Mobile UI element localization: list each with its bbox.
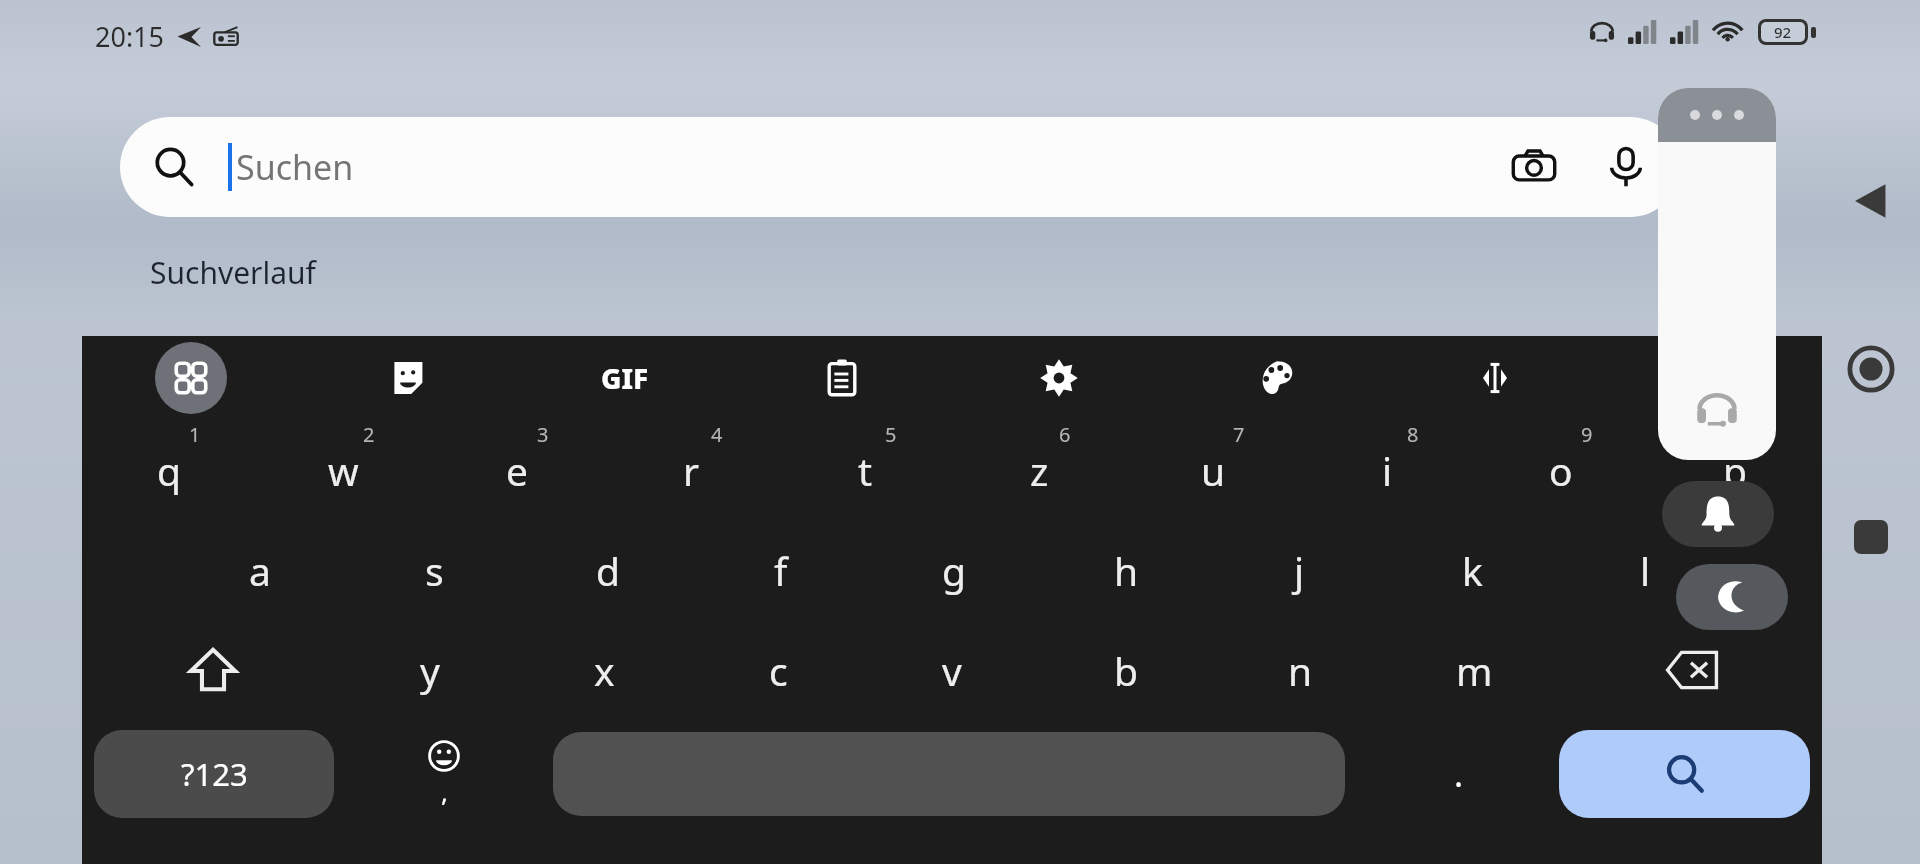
staticText: m (1456, 644, 1493, 697)
button[interactable]: . (1383, 720, 1534, 828)
staticText: 3 (537, 421, 549, 448)
button[interactable]: Startbildschirm (1835, 333, 1907, 405)
staticText: y (420, 644, 440, 697)
button[interactable]: o (1474, 420, 1648, 520)
staticText: 9 (1581, 421, 1593, 448)
button[interactable]: Einstellungen (950, 336, 1168, 420)
staticText: d (596, 544, 620, 597)
staticText: 8 (1407, 421, 1419, 448)
button[interactable]: Zwischenablage (733, 336, 950, 420)
staticText: r (683, 444, 700, 497)
button[interactable]: Löschen (1561, 620, 1822, 720)
button[interactable]: Suchen (1559, 730, 1810, 818)
staticText: e (506, 444, 528, 497)
button[interactable]: z (952, 420, 1126, 520)
staticText: 5 (885, 421, 897, 448)
staticText: i (1382, 444, 1393, 497)
button[interactable]: Emoji (365, 720, 522, 828)
staticText: k (1462, 544, 1483, 597)
button[interactable]: l (1559, 520, 1732, 620)
button[interactable]: n (1213, 620, 1387, 720)
button[interactable]: g (867, 520, 1040, 620)
staticText: c (769, 644, 788, 697)
button[interactable]: y (343, 620, 517, 720)
staticText: v (942, 644, 962, 697)
button[interactable]: Design (1168, 336, 1386, 420)
staticText: t (858, 444, 873, 497)
button[interactable]: a (173, 520, 347, 620)
staticText: 92 (1774, 22, 1792, 42)
button[interactable]: m (1387, 620, 1561, 720)
button[interactable]: h (1040, 520, 1213, 620)
button[interactable]: e (430, 420, 604, 520)
button[interactable]: Sticker (299, 336, 516, 420)
button[interactable]: GIF (516, 336, 733, 420)
button[interactable]: c (691, 620, 865, 720)
button[interactable]: w (256, 420, 430, 520)
button[interactable]: Leertaste (553, 732, 1345, 816)
staticText: p (1723, 444, 1747, 497)
button[interactable]: i (1300, 420, 1474, 520)
staticText: j (1294, 544, 1305, 597)
button[interactable]: t (778, 420, 952, 520)
button[interactable]: Suchsymbol (120, 117, 1680, 217)
staticText: x (594, 644, 615, 697)
staticText: s (425, 544, 444, 597)
button[interactable]: p (1648, 420, 1822, 520)
button[interactable]: v (865, 620, 1039, 720)
button[interactable]: d (521, 520, 694, 620)
button[interactable]: Audio (1658, 360, 1776, 460)
staticText: h (1114, 544, 1139, 597)
staticText: a (249, 544, 271, 597)
staticText: 20:15 (95, 18, 165, 55)
staticText: l (1640, 544, 1651, 597)
staticText: Suchen (236, 144, 354, 190)
button[interactable]: Suchverlauf (150, 252, 316, 293)
button[interactable]: Umschalttaste (82, 620, 343, 720)
staticText: g (942, 544, 966, 597)
staticText: Suchverlauf (150, 252, 316, 293)
staticText: 6 (1059, 421, 1071, 448)
staticText: . (1454, 751, 1464, 797)
other: Suchsymbol (152, 145, 196, 189)
button[interactable]: u (1126, 420, 1300, 520)
staticText: 2 (363, 421, 375, 448)
button[interactable]: r (604, 420, 778, 520)
button[interactable]: Overlay-Menü (1658, 88, 1776, 142)
button[interactable]: ?123 (94, 730, 334, 818)
button[interactable]: Textbearbeitung (1386, 336, 1604, 420)
button[interactable]: f (694, 520, 867, 620)
button[interactable]: k (1386, 520, 1559, 620)
button[interactable]: Zurück (1835, 165, 1907, 237)
staticText: GIF (601, 359, 649, 397)
staticText: z (1030, 444, 1049, 497)
staticText: 1 (189, 421, 201, 448)
staticText: u (1201, 444, 1226, 497)
button[interactable]: Google Lens (1498, 131, 1570, 203)
button[interactable]: Nicht stören (1676, 564, 1788, 630)
staticText: o (1549, 444, 1573, 497)
button[interactable]: Benachrichtigungen (1662, 481, 1774, 547)
button[interactable]: b (1039, 620, 1213, 720)
staticText: w (328, 444, 359, 497)
button[interactable]: Spracheingabe (1590, 131, 1662, 203)
staticText: 4 (711, 421, 723, 448)
staticText: q (157, 444, 181, 497)
button[interactable]: q (82, 420, 256, 520)
staticText: ?123 (181, 753, 248, 795)
button[interactable]: j (1213, 520, 1386, 620)
button[interactable]: Übersicht (1835, 501, 1907, 573)
button[interactable]: x (517, 620, 691, 720)
button[interactable]: Alle Tools (82, 336, 299, 420)
staticText: n (1288, 644, 1313, 697)
staticText: , (441, 774, 448, 809)
button[interactable]: s (347, 520, 521, 620)
staticText: 7 (1233, 421, 1245, 448)
staticText: b (1114, 644, 1138, 697)
staticText: f (774, 544, 788, 597)
